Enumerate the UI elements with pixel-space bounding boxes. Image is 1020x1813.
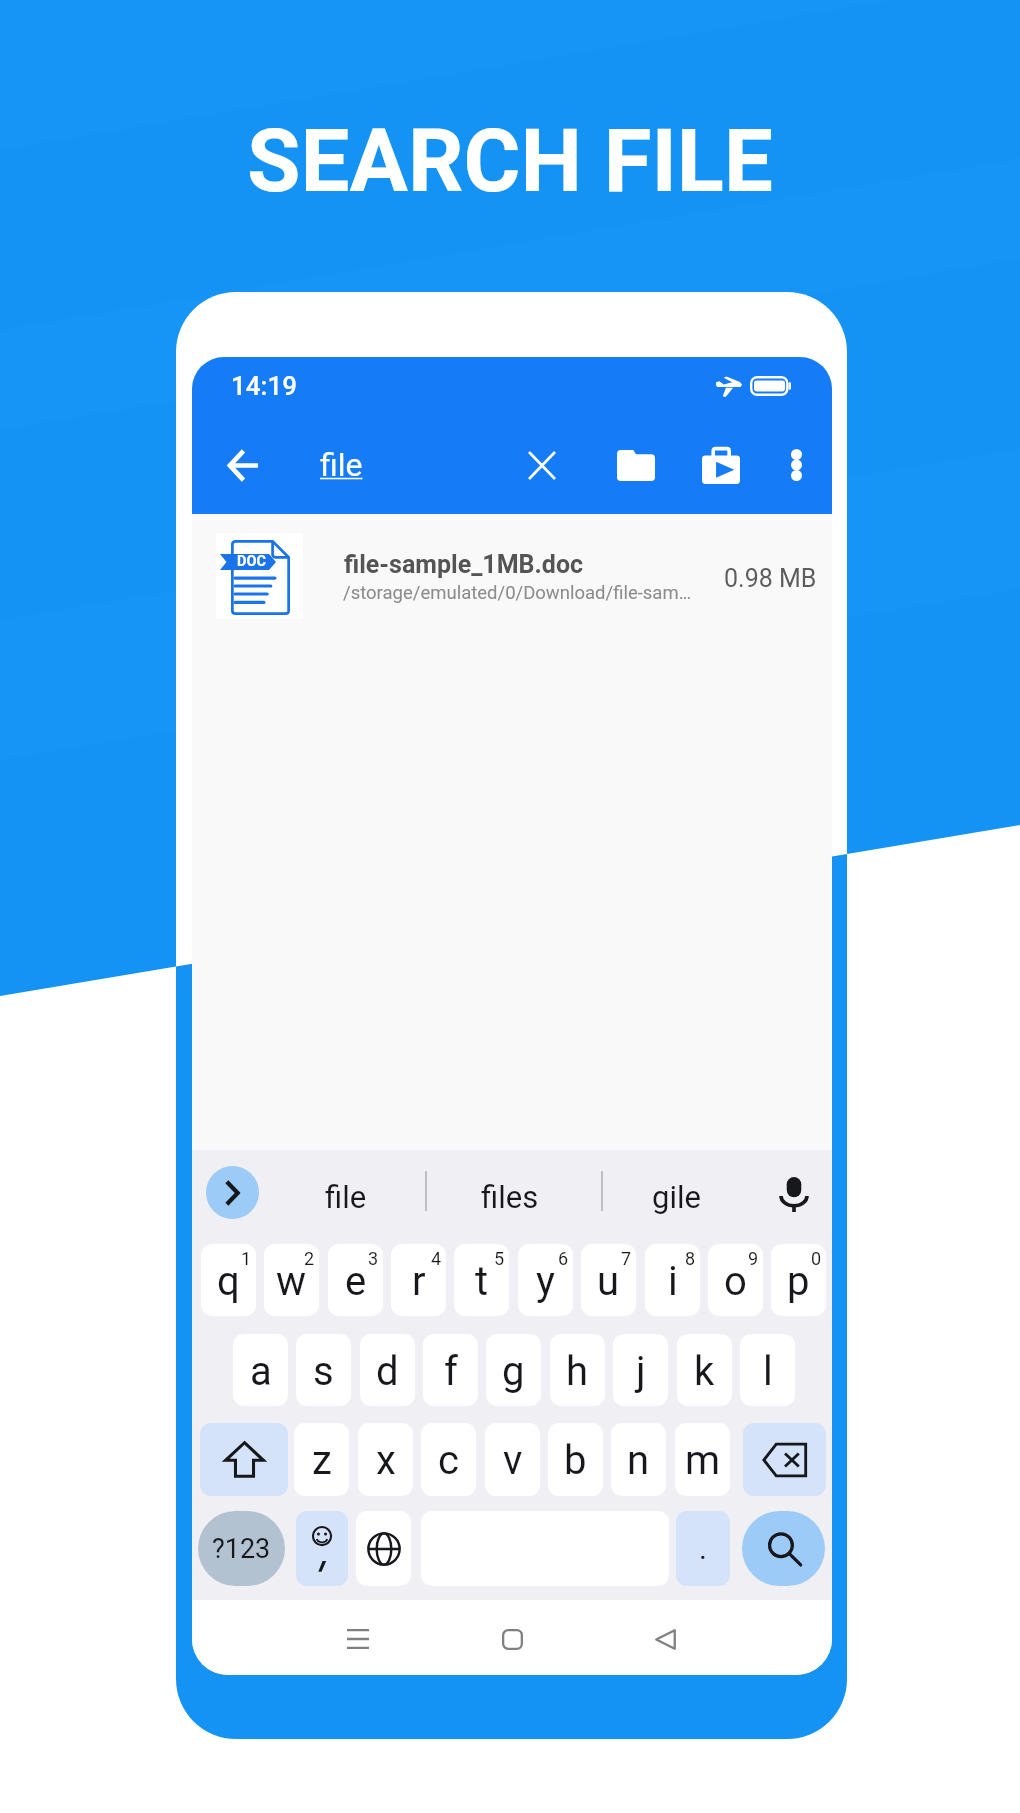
button[interactable]: q [201,1244,256,1316]
staticText: e [345,1258,367,1305]
staticText: . [699,1531,707,1566]
button[interactable]: h [550,1334,605,1406]
staticText: f [444,1348,458,1395]
staticText: 3 [368,1248,379,1269]
staticText: b [564,1437,587,1484]
staticText: r [412,1258,426,1305]
button[interactable]: c [421,1423,476,1496]
button[interactable]: DOC [192,514,832,634]
staticText: 6 [558,1248,569,1269]
button[interactable]: gile [616,1150,736,1244]
staticText: DOC [237,553,266,570]
staticText: x [376,1437,396,1484]
button[interactable]: o [708,1244,763,1316]
button[interactable]: t [454,1244,509,1316]
button[interactable]: files [450,1150,570,1244]
button[interactable]: Back [635,1609,695,1669]
button[interactable]: n [611,1423,666,1496]
button[interactable]: Shift [200,1423,288,1496]
staticText: files [481,1179,539,1215]
button[interactable]: Home [482,1609,542,1669]
button[interactable]: file [286,1150,406,1244]
staticText: n [627,1437,650,1484]
button[interactable]: v [485,1423,540,1496]
button[interactable]: d [360,1334,415,1406]
button[interactable]: Emoji [296,1511,348,1586]
button[interactable]: x [358,1423,413,1496]
staticText: 9 [748,1248,759,1269]
button[interactable]: g [486,1334,541,1406]
staticText: file [320,446,363,484]
staticText: w [276,1258,307,1305]
button[interactable]: Recents [328,1609,388,1669]
button[interactable]: Backspace [743,1423,826,1496]
staticText: 14:19 [231,371,298,401]
staticText: ?123 [212,1533,271,1565]
button[interactable]: e [328,1244,383,1316]
button[interactable]: Search [742,1511,825,1586]
button[interactable]: s [296,1334,351,1406]
staticText: s [313,1348,334,1395]
staticText: y [536,1258,555,1305]
button[interactable]: Apps [693,437,749,493]
staticText: z [312,1437,332,1484]
staticText: h [566,1348,589,1395]
staticText: t [475,1258,489,1305]
staticText: 8 [685,1248,696,1269]
staticText: d [376,1348,399,1395]
button[interactable]: Back [220,443,264,487]
staticText: gile [652,1179,701,1215]
staticText: SEARCH FILE [247,110,773,212]
button[interactable]: More options [768,437,824,493]
button[interactable]: z [294,1423,349,1496]
staticText: j [636,1348,646,1395]
staticText: m [685,1437,721,1484]
button[interactable]: Change language [356,1511,411,1586]
button[interactable]: More suggestions [206,1166,259,1219]
staticText: i [668,1258,678,1305]
staticText: a [250,1348,272,1395]
button[interactable]: u [581,1244,636,1316]
button[interactable]: k [677,1334,732,1406]
staticText: file-sample_1MB.doc [344,550,584,579]
staticText: 1 [241,1248,252,1269]
button[interactable]: l [740,1334,795,1406]
staticText: v [503,1437,523,1484]
staticText: 7 [621,1248,632,1269]
button[interactable]: ?123 [198,1511,285,1586]
button[interactable]: i [645,1244,700,1316]
staticText: 2 [304,1248,315,1269]
staticText: u [597,1258,620,1305]
staticText: l [763,1348,773,1395]
button[interactable]: f [423,1334,478,1406]
button[interactable]: b [548,1423,603,1496]
button[interactable]: Clear [514,437,570,493]
staticText: 4 [431,1248,442,1269]
staticText: c [438,1437,459,1484]
staticText: p [787,1258,810,1305]
button[interactable]: w [264,1244,319,1316]
button[interactable]: y [518,1244,573,1316]
button[interactable]: a [233,1334,288,1406]
button[interactable]: p [771,1244,826,1316]
button[interactable]: r [391,1244,446,1316]
staticText: 5 [494,1248,505,1269]
button[interactable]: Voice input [766,1166,822,1222]
staticText: o [724,1258,747,1305]
button[interactable]: . [676,1511,730,1586]
button[interactable]: j [613,1334,668,1406]
staticText: g [502,1348,525,1395]
staticText: 0.98 MB [724,564,817,593]
staticText: k [694,1348,715,1395]
staticText: q [217,1258,240,1305]
button[interactable]: m [675,1423,730,1496]
staticText: file [325,1179,367,1215]
staticText: /storage/emulated/0/Download/file-sam… [343,582,692,604]
button[interactable]: Folders [608,437,664,493]
staticText: 0 [811,1248,822,1269]
